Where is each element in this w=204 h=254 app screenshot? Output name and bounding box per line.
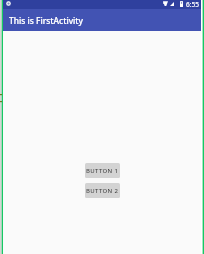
- staticText: 6:55: [186, 0, 199, 9]
- staticText: BUTTON 2: [86, 187, 119, 195]
- button[interactable]: BUTTON 1: [85, 163, 120, 178]
- staticText: BUTTON 1: [86, 167, 119, 175]
- button[interactable]: BUTTON 2: [85, 183, 120, 198]
- staticText: This is FirstActivity: [9, 15, 83, 26]
- other: Notification: [6, 1, 11, 6]
